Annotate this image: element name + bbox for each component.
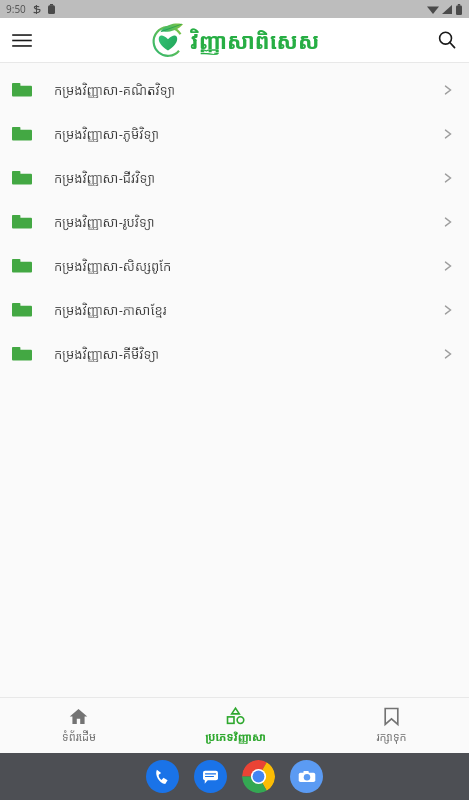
staticText: វិញ្ញាសាពិសេស <box>190 25 320 55</box>
button[interactable]: កម្រងវិញ្ញាសា-ភូមិវិទ្យា <box>0 112 469 156</box>
staticText: រក្សាទុក <box>376 729 407 744</box>
button[interactable]: Home <box>0 698 157 753</box>
other: Saved <box>384 707 399 726</box>
staticText: ទំព័រដើម <box>62 729 96 744</box>
button[interactable]: កម្រងវិញ្ញាសា-គណិតវិទ្យា <box>0 68 469 112</box>
button[interactable]: កម្រងវិញ្ញាសា-សិស្សពូកែ <box>0 244 469 288</box>
button[interactable]: Menu <box>0 18 44 62</box>
button[interactable]: Saved <box>313 698 469 753</box>
other: Categories <box>226 707 245 726</box>
button[interactable]: កម្រងវិញ្ញាសា-រូបវិទ្យា <box>0 200 469 244</box>
button[interactable]: កម្រងវិញ្ញាសា-គីមីវិទ្យា <box>0 332 469 376</box>
button[interactable]: កម្រងវិញ្ញាសា-ជីវវិទ្យា <box>0 156 469 200</box>
button[interactable]: Phone <box>146 760 179 793</box>
staticText: កម្រងវិញ្ញាសា-ជីវវិទ្យា <box>54 169 155 187</box>
button[interactable]: Categories <box>157 698 313 753</box>
staticText: ប្រភេទវិញ្ញាសា <box>205 729 266 744</box>
staticText: កម្រងវិញ្ញាសា-ភូមិវិទ្យា <box>54 125 159 143</box>
staticText: កម្រងវិញ្ញាសា-ភាសាខ្មែរ <box>54 301 167 319</box>
button[interactable]: Search <box>425 18 469 62</box>
staticText: កម្រងវិញ្ញាសា-សិស្សពូកែ <box>54 257 172 275</box>
staticText: កម្រងវិញ្ញាសា-គីមីវិទ្យា <box>54 345 159 363</box>
staticText: កម្រងវិញ្ញាសា-រូបវិទ្យា <box>54 213 155 231</box>
button[interactable]: Chrome <box>242 760 275 793</box>
button[interactable]: Camera <box>290 760 323 793</box>
staticText: កម្រងវិញ្ញាសា-គណិតវិទ្យា <box>54 81 176 99</box>
other: Home <box>69 707 88 726</box>
button[interactable]: Messages <box>194 760 227 793</box>
staticText: 9:50 <box>6 2 26 16</box>
button[interactable]: កម្រងវិញ្ញាសា-ភាសាខ្មែរ <box>0 288 469 332</box>
